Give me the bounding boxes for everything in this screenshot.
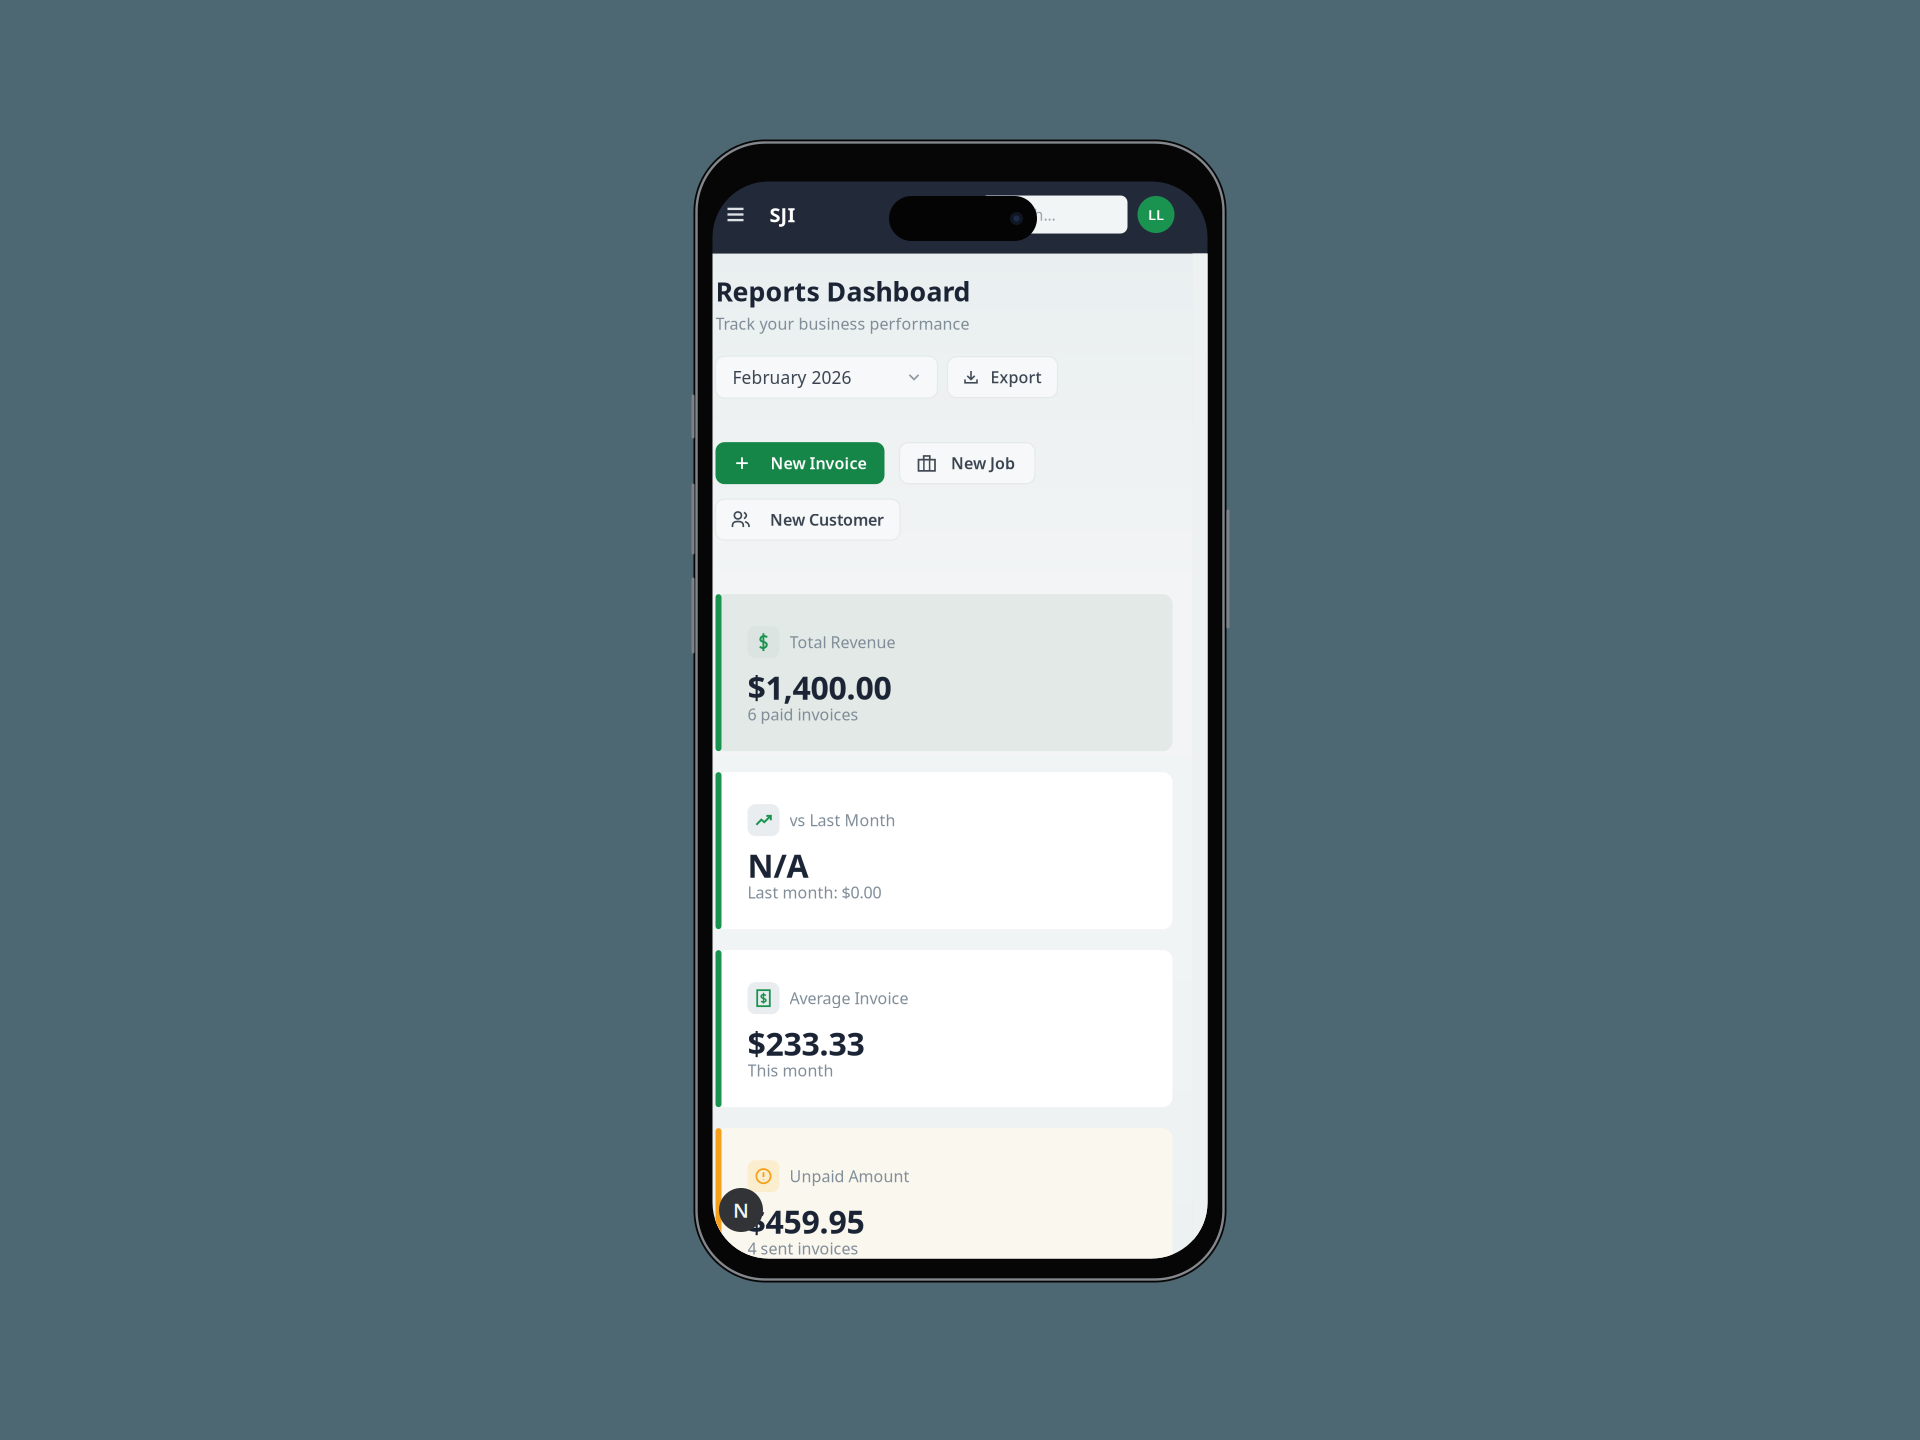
button[interactable]: February 2026 <box>715 356 937 398</box>
button[interactable]: New Customer <box>715 499 900 540</box>
staticText: Last month: $0.00 <box>747 882 881 903</box>
staticText: Export <box>990 366 1041 388</box>
button[interactable]: New Invoice <box>715 442 884 484</box>
staticText: Track your business performance <box>715 313 969 334</box>
button[interactable]: Account <box>1137 196 1174 233</box>
staticText: vs Last Month <box>789 809 895 831</box>
staticText: New Job <box>951 452 1015 474</box>
button[interactable]: Export <box>947 357 1057 398</box>
staticText: 4 sent invoices <box>747 1238 858 1259</box>
button[interactable]: Search <box>980 195 1127 233</box>
staticText: LL <box>1148 205 1164 224</box>
button[interactable]: Menu <box>719 197 751 232</box>
staticText: This month <box>747 1060 833 1081</box>
button[interactable]: New Job <box>899 443 1035 484</box>
staticText: New Invoice <box>770 452 866 474</box>
staticText: N <box>733 1197 749 1223</box>
staticText: $459.95 <box>747 1200 864 1243</box>
staticText: New Customer <box>770 509 884 530</box>
staticText: Average Invoice <box>789 987 908 1009</box>
staticText: $233.33 <box>747 1022 864 1065</box>
staticText: Total Revenue <box>789 631 895 653</box>
staticText: Search... <box>992 204 1055 225</box>
staticText: SJI <box>769 201 795 228</box>
staticText: February 2026 <box>732 366 851 389</box>
staticText: 6 paid invoices <box>747 704 858 725</box>
staticText: N/A <box>747 844 808 887</box>
staticText: $1,400.00 <box>747 666 891 709</box>
staticText: Unpaid Amount <box>789 1165 909 1187</box>
staticText: Reports Dashboard <box>715 273 970 309</box>
